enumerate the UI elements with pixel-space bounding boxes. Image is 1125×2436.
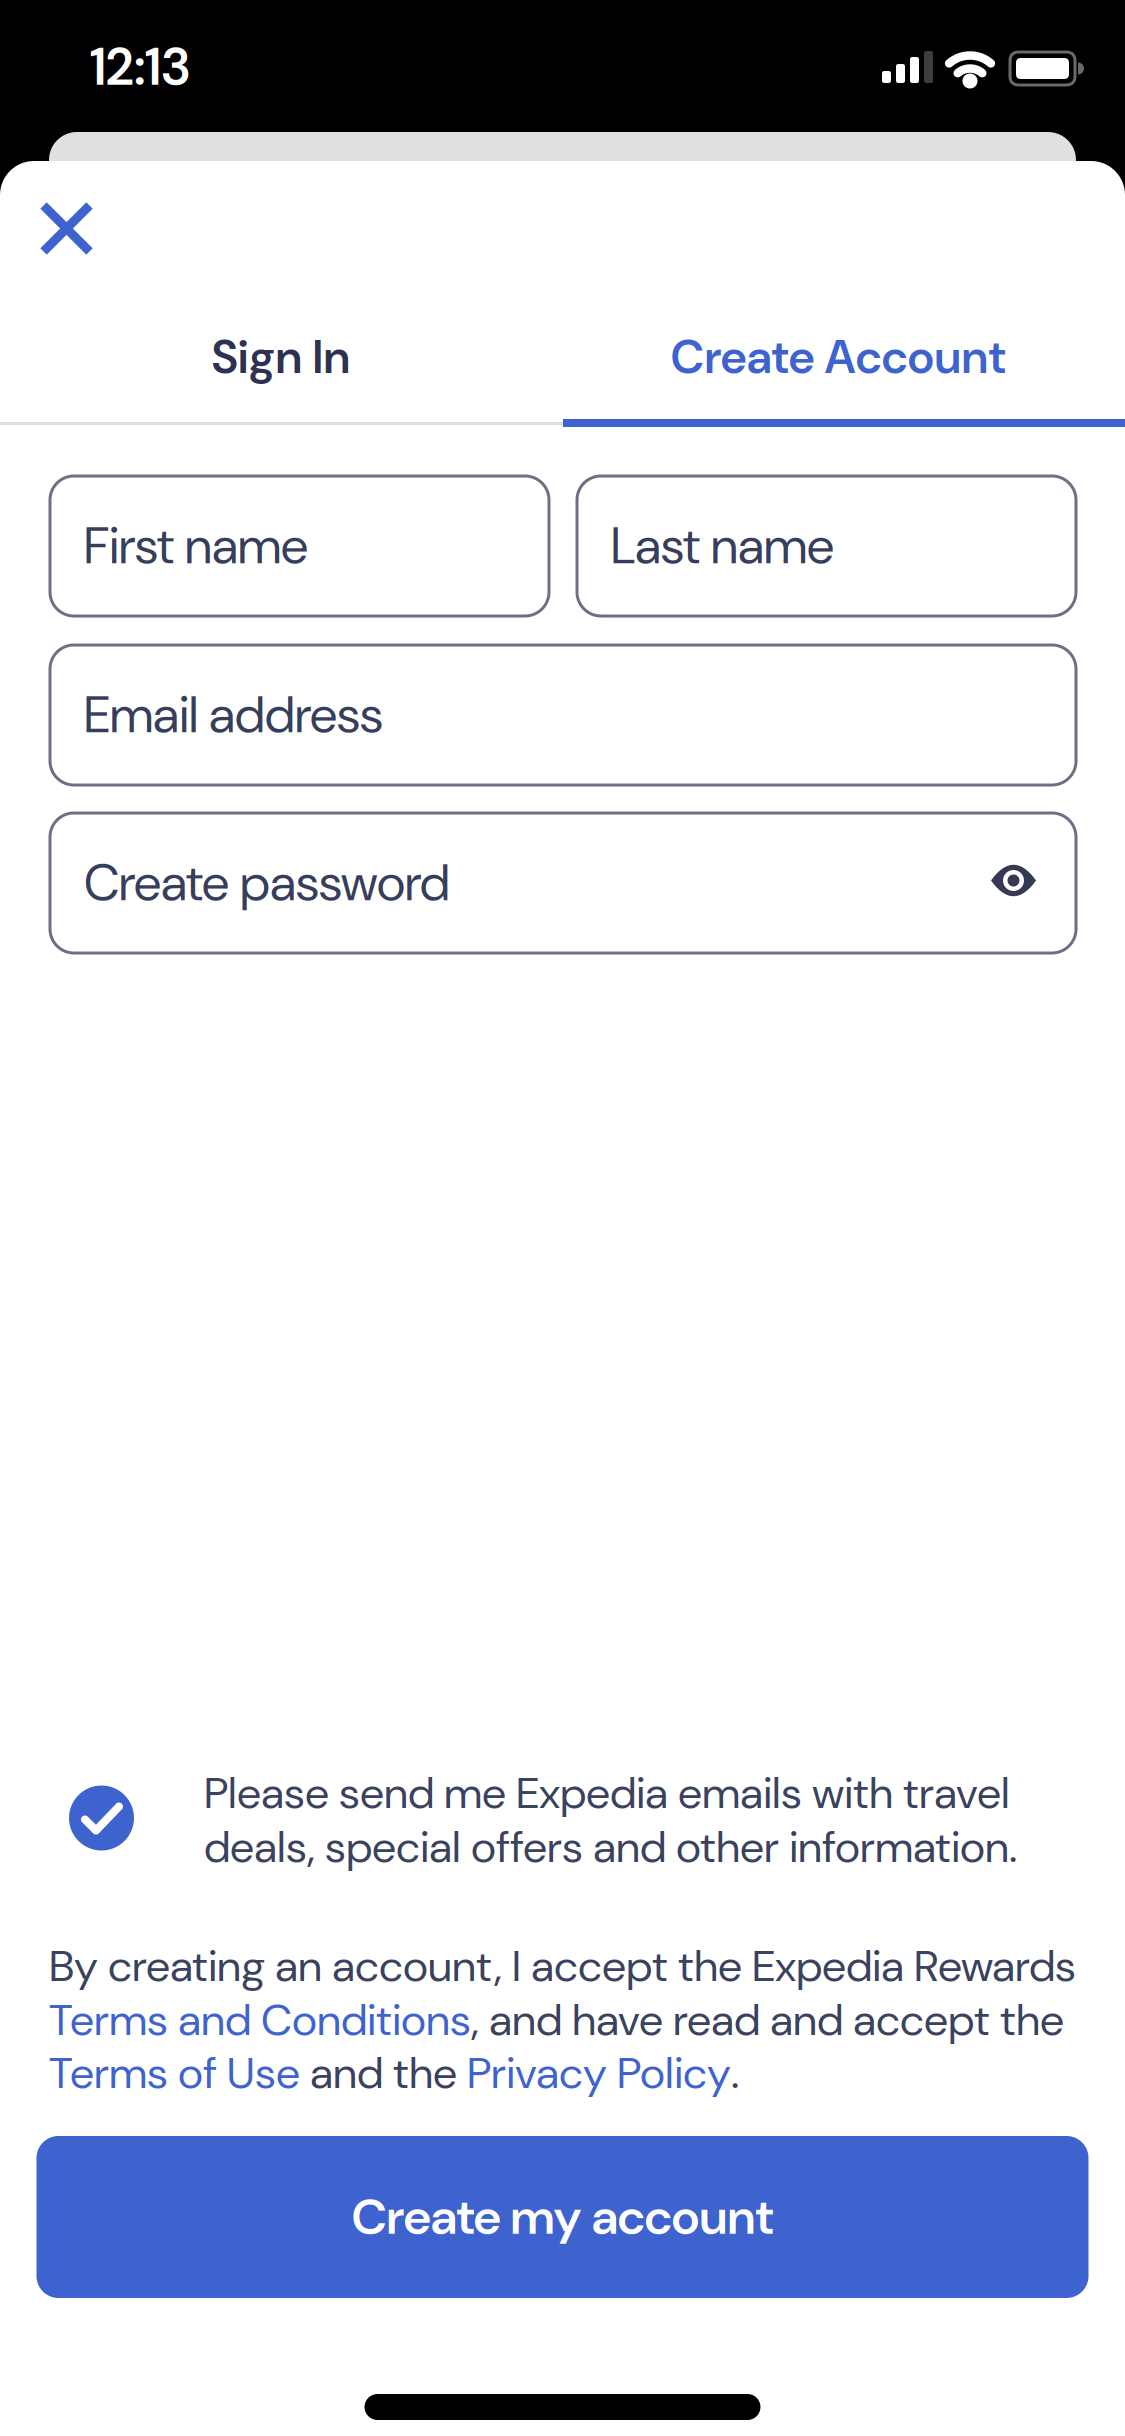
staticText: Create my account (351, 2185, 773, 2249)
button[interactable]: Terms and Conditions (49, 1991, 471, 2049)
button[interactable] (43, 205, 89, 251)
staticText: Please send me Expedia emails with trave… (204, 1764, 1010, 1822)
button[interactable]: Sign In (0, 297, 562, 417)
staticText: Terms and Conditions (49, 1991, 471, 2049)
staticText: 12:13 (90, 33, 190, 101)
button[interactable]: Create my account (36, 2136, 1088, 2298)
button[interactable]: Terms of Use (49, 2044, 300, 2102)
staticText: Create Account (670, 327, 1005, 387)
staticText: . (731, 2044, 739, 2102)
button[interactable] (69, 1785, 134, 1850)
staticText: Last name (611, 513, 834, 579)
button[interactable]: Last name (577, 476, 1076, 616)
button[interactable]: First name (50, 476, 549, 616)
staticText: and the (300, 2044, 467, 2102)
button[interactable]: Create password (50, 813, 1076, 953)
staticText: , and have read and accept the (471, 1991, 1064, 2049)
staticText: By creating an account, I accept the Exp… (49, 1937, 1076, 1995)
button[interactable]: Privacy Policy (467, 2044, 731, 2102)
staticText: Email address (84, 682, 383, 748)
staticText: deals, special offers and other informat… (204, 1818, 1017, 1876)
staticText: Terms of Use (49, 2044, 300, 2102)
button[interactable]: Email address (50, 645, 1076, 785)
staticText: Privacy Policy (467, 2044, 731, 2102)
staticText: Sign In (211, 327, 350, 387)
button[interactable] (983, 850, 1043, 910)
staticText: First name (84, 513, 308, 579)
staticText: Create password (84, 850, 450, 916)
button[interactable]: Create Account (557, 297, 1119, 417)
